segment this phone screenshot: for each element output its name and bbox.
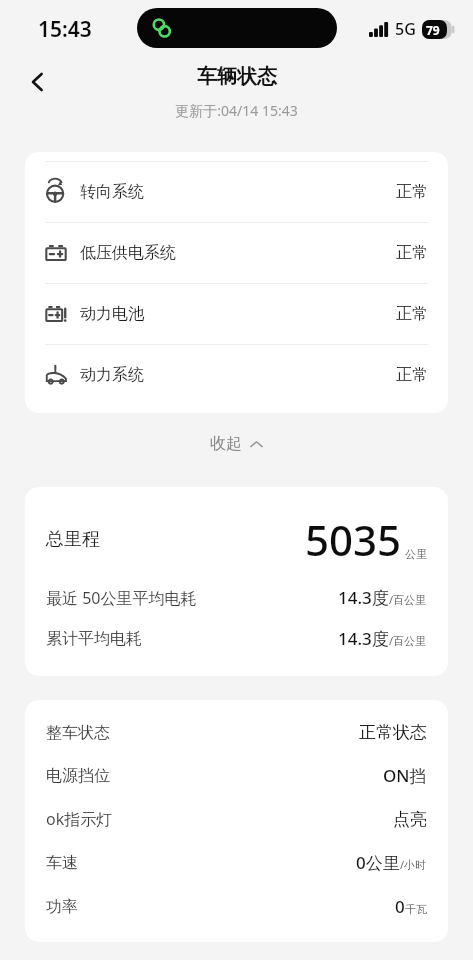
button[interactable]: 低压供电系统	[45, 223, 428, 283]
staticText: 正常	[396, 243, 428, 263]
staticText: 动力电池	[80, 304, 144, 324]
staticText: 14.3度	[338, 586, 389, 609]
staticText: 正常	[396, 182, 428, 202]
staticText: 转向系统	[80, 182, 144, 202]
staticText: /小时	[400, 857, 427, 872]
staticText: 车速	[46, 853, 78, 873]
staticText: 5G	[395, 18, 416, 40]
staticText: 5035	[305, 511, 402, 568]
staticText: 车辆状态	[197, 64, 277, 89]
staticText: 电源挡位	[46, 766, 110, 786]
staticText: 整车状态	[46, 723, 110, 743]
staticText: 更新于:04/14 15:43	[175, 101, 298, 120]
button[interactable]: 动力系统	[45, 345, 428, 405]
button[interactable]: 动力电池	[45, 284, 428, 344]
staticText: 0	[395, 895, 405, 918]
staticText: ON挡	[383, 764, 427, 787]
button[interactable]: Back	[16, 60, 60, 104]
staticText: 公里	[405, 547, 427, 561]
staticText: 最近 50公里平均电耗	[46, 587, 197, 609]
staticText: 79	[426, 22, 440, 38]
staticText: 正常状态	[359, 722, 427, 743]
staticText: /百公里	[389, 592, 427, 607]
staticText: 千瓦	[405, 902, 427, 916]
staticText: 15:43	[38, 15, 92, 44]
staticText: 正常	[396, 304, 428, 324]
staticText: 动力系统	[80, 365, 144, 385]
staticText: 低压供电系统	[80, 243, 176, 263]
staticText: 0公里	[356, 851, 400, 874]
staticText: 点亮	[393, 809, 427, 830]
staticText: ok指示灯	[46, 808, 113, 830]
staticText: /百公里	[389, 633, 427, 648]
staticText: 累计平均电耗	[46, 629, 142, 649]
button[interactable]: 转向系统	[45, 162, 428, 222]
staticText: 功率	[46, 897, 78, 917]
button[interactable]: 收起	[0, 413, 473, 475]
staticText: 收起	[210, 434, 242, 454]
staticText: 总里程	[46, 528, 100, 551]
staticText: 正常	[396, 365, 428, 385]
staticText: 14.3度	[338, 627, 389, 650]
